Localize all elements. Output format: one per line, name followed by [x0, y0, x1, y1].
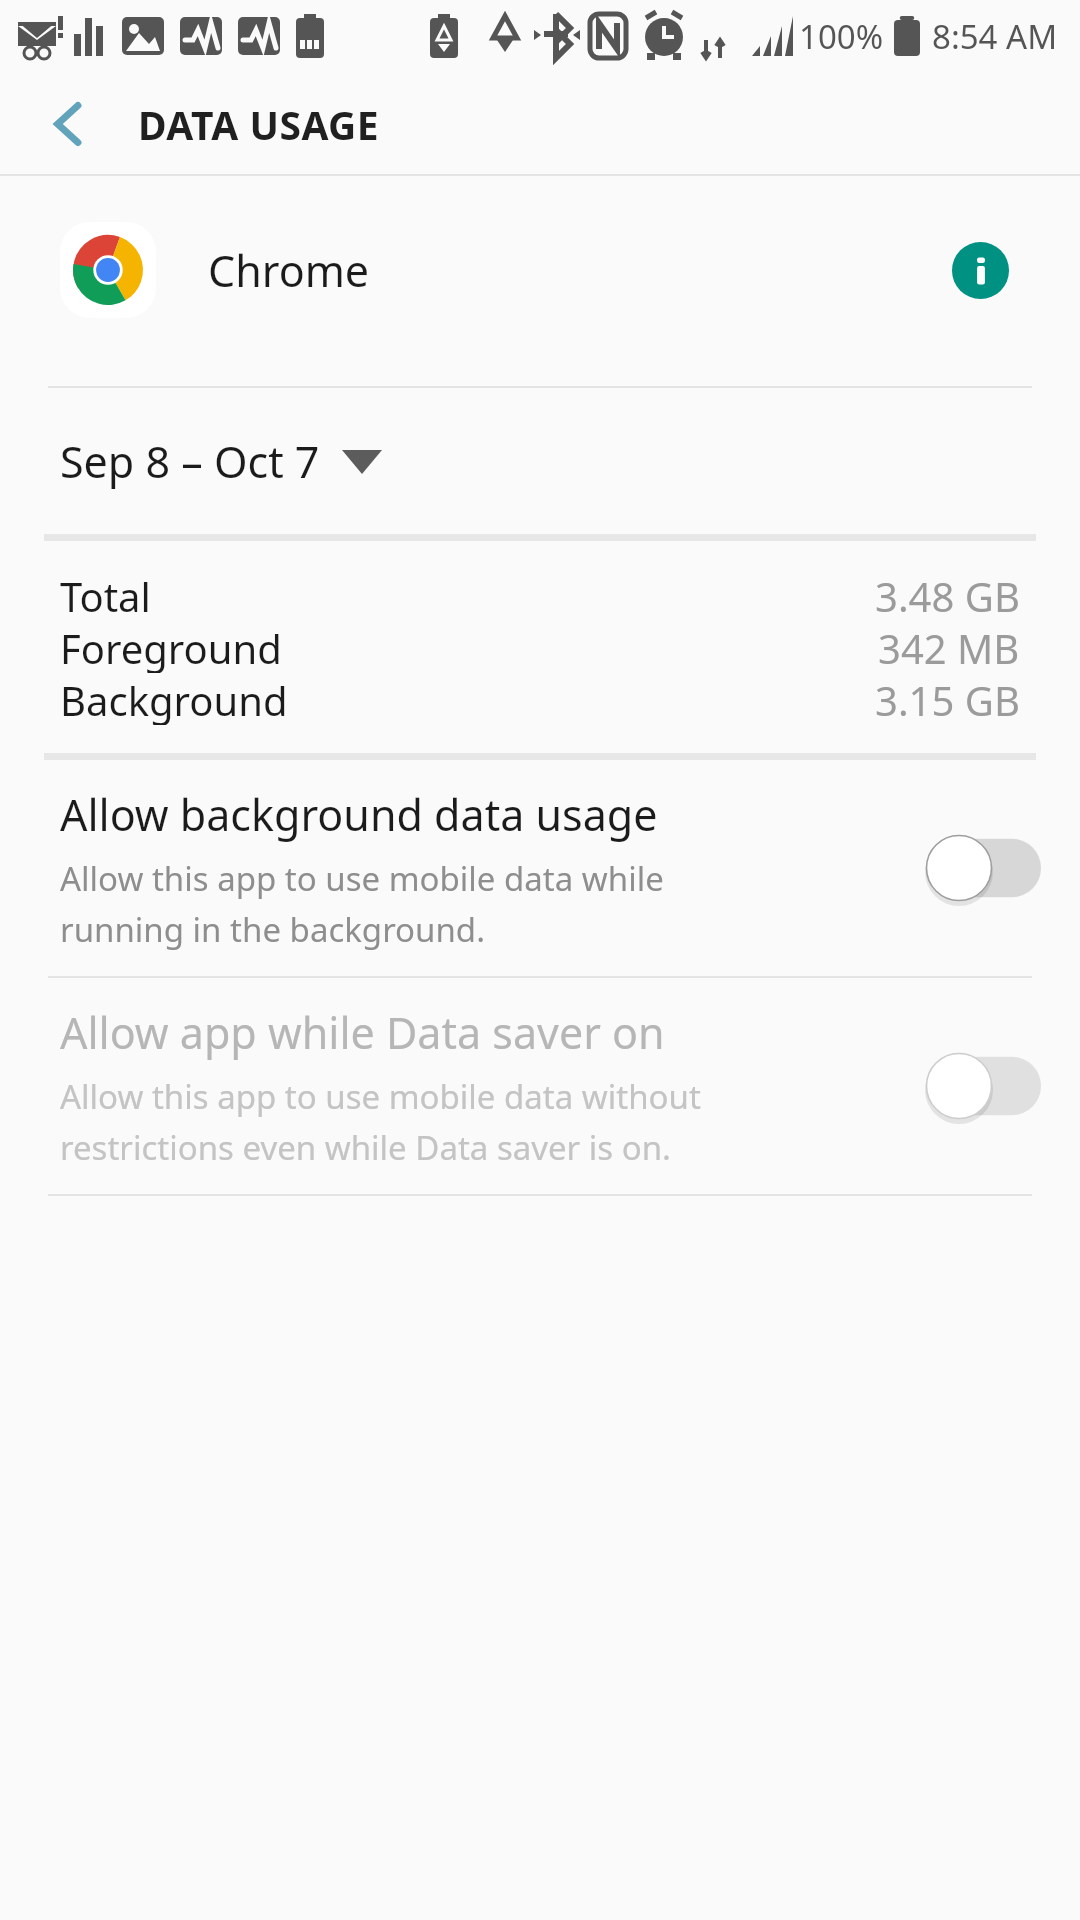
- button[interactable]: Allow background data usage: [910, 813, 1060, 923]
- staticText: 3.48 GB: [875, 569, 1020, 621]
- button[interactable]: Chrome: [0, 190, 1080, 350]
- staticText: DATA USAGE: [138, 98, 380, 151]
- staticText: Chrome: [208, 241, 370, 300]
- staticText: restrictions even while Data saver is on…: [60, 1125, 671, 1170]
- staticText: Sep 8 – Oct 7: [60, 432, 320, 491]
- staticText: 342 MB: [878, 621, 1020, 673]
- staticText: Allow background data usage: [60, 785, 658, 844]
- staticText: running in the background.: [60, 907, 486, 952]
- staticText: Foreground: [60, 621, 282, 673]
- button[interactable]: Allow background data usage: [0, 760, 1080, 976]
- button[interactable]: Sep 8 – Oct 7: [0, 388, 1080, 534]
- button[interactable]: Allow app while Data saver on: [910, 1031, 1060, 1141]
- staticText: 3.15 GB: [875, 673, 1020, 725]
- staticText: Allow this app to use mobile data withou…: [60, 1074, 701, 1119]
- staticText: Allow app while Data saver on: [60, 1003, 665, 1062]
- staticText: 8:54 AM: [932, 14, 1058, 59]
- button[interactable]: App info: [934, 224, 1026, 316]
- button[interactable]: Allow app while Data saver on: [0, 978, 1080, 1194]
- staticText: 100%: [799, 14, 884, 59]
- staticText: Allow this app to use mobile data while: [60, 856, 664, 901]
- button[interactable]: Back: [22, 76, 118, 172]
- staticText: Total: [60, 569, 151, 621]
- staticText: Background: [60, 673, 288, 725]
